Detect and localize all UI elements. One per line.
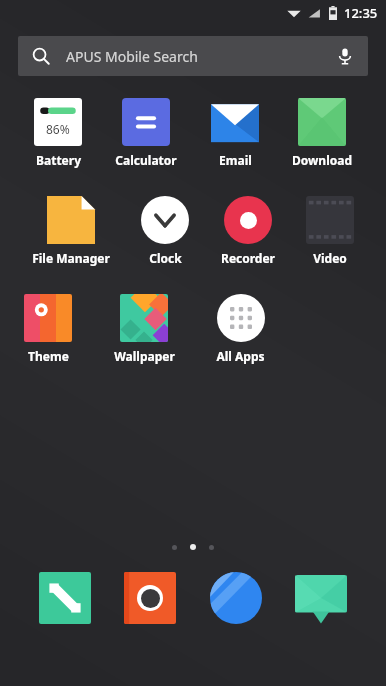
staticText: Wallpaper [114, 348, 175, 364]
staticText: All Apps [216, 348, 265, 364]
button[interactable]: File Manager [32, 196, 110, 266]
button[interactable]: 86% [34, 98, 82, 168]
staticText: Recorder [221, 250, 275, 266]
button[interactable]: Wallpaper [96, 294, 192, 364]
button[interactable]: All Apps [192, 294, 289, 364]
button[interactable]: Search [18, 36, 368, 76]
button[interactable]: Theme [0, 294, 96, 364]
button[interactable]: Email [211, 98, 259, 168]
other: Search [32, 47, 50, 65]
button[interactable]: Camera [124, 572, 176, 624]
staticText: 12:35 [344, 4, 378, 22]
other: Voice search [336, 47, 354, 65]
staticText: Download [292, 152, 352, 168]
button[interactable]: Video [306, 196, 354, 266]
staticText: Email [219, 152, 252, 168]
staticText: 86% [46, 121, 70, 137]
staticText: Clock [149, 250, 182, 266]
button[interactable]: Recorder [221, 196, 275, 266]
button[interactable]: Download [292, 98, 352, 168]
button[interactable]: Browser [210, 572, 262, 624]
staticText: Battery [36, 152, 81, 168]
staticText: Calculator [115, 152, 177, 168]
button[interactable]: Calculator [115, 98, 177, 168]
button[interactable]: Messages [295, 572, 347, 624]
button[interactable]: Phone [39, 572, 91, 624]
staticText: Video [313, 250, 347, 266]
staticText: Theme [28, 348, 69, 364]
staticText: APUS Mobile Search [66, 47, 198, 66]
staticText: File Manager [32, 250, 110, 266]
button[interactable]: Clock [141, 196, 189, 266]
